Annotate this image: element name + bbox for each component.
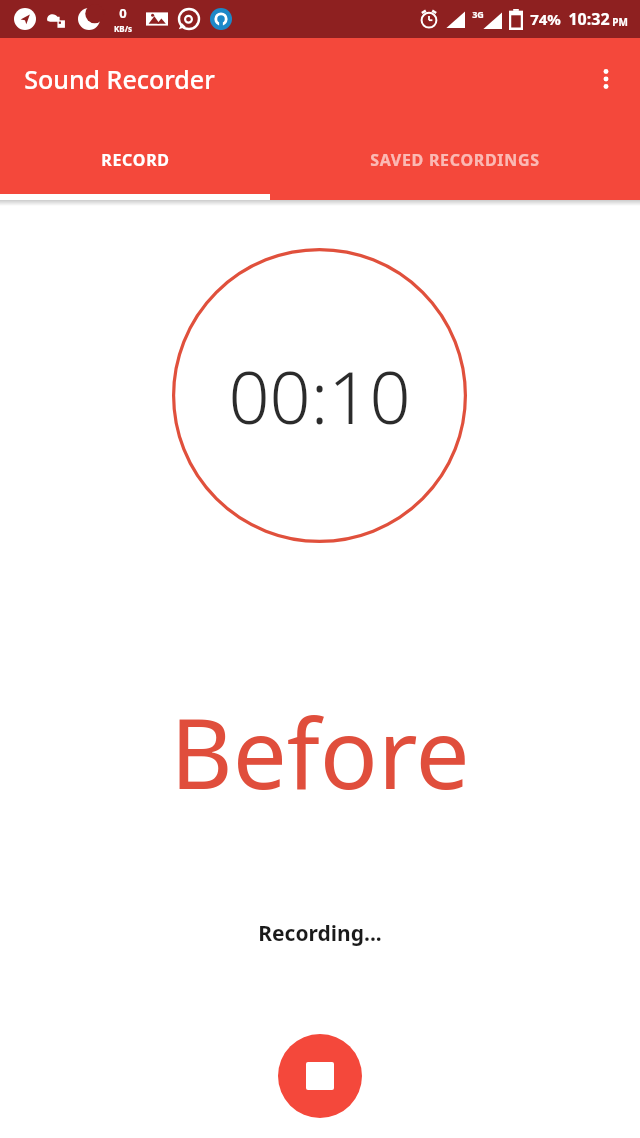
staticText: Before <box>170 686 470 817</box>
staticText: SAVED RECORDINGS <box>370 149 540 171</box>
button[interactable]: Stop recording <box>278 1034 362 1118</box>
staticText: 74% <box>530 9 561 29</box>
staticText: PM <box>612 15 628 29</box>
button[interactable]: SAVED RECORDINGS <box>270 119 640 200</box>
staticText: Recording... <box>258 919 382 948</box>
staticText: 00:10 <box>228 347 411 445</box>
staticText: Sound Recorder <box>24 62 215 96</box>
staticText: 3G <box>472 8 484 20</box>
staticText: RECORD <box>101 149 170 171</box>
staticText: 0 <box>119 4 127 22</box>
staticText: 10:32 <box>568 8 610 30</box>
button[interactable]: RECORD <box>0 119 270 200</box>
button[interactable]: More options <box>582 55 630 103</box>
staticText: KB/s <box>114 23 132 34</box>
